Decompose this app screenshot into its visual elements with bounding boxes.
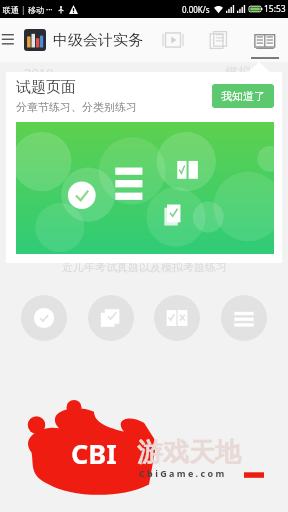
staticText: C b i G a m e . c o m [139,467,225,479]
staticText: ··· [44,4,53,15]
button[interactable]: Menu [2,30,22,50]
staticText: 联通 [3,5,19,15]
staticText: 2019 [24,64,54,82]
staticText: 游戏天地 [137,436,241,469]
staticText: 移动 [28,5,44,15]
button[interactable]: Video [156,18,190,62]
staticText: 近几年考试真题以及模拟考题练习 [62,260,227,274]
staticText: 试题页面 [16,78,76,97]
staticText: 中级会计实务 [53,31,143,50]
staticText: 0.00K/s [182,4,210,15]
button[interactable]: List [221,295,267,341]
staticText: 分章节练习、分类别练习 [16,100,137,114]
button[interactable]: 我知道了 [212,84,274,108]
button[interactable]: Chapter practice [21,295,67,341]
button[interactable]: Notes [202,18,236,62]
button[interactable]: Paper practice [88,295,134,341]
staticText: 15:53 [264,3,286,15]
staticText: 我知道了 [221,89,265,103]
staticText: 模拟题 [225,64,264,80]
staticText: CBI [71,435,117,472]
button[interactable]: Questions [248,18,282,62]
staticText: | [19,4,28,15]
button[interactable]: Compare [154,295,200,341]
